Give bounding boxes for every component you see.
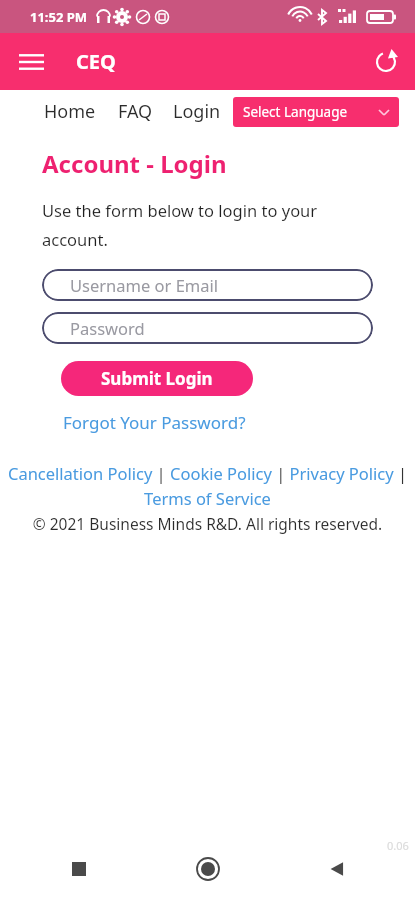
staticText: 0.06 [387, 838, 409, 853]
button[interactable]: Forgot Your Password? [63, 409, 246, 436]
staticText: CEQ [76, 48, 116, 75]
staticText: Home [44, 99, 96, 124]
button[interactable]: Login [173, 99, 221, 124]
button[interactable]: Select Language [233, 97, 399, 127]
button[interactable]: Home [186, 847, 230, 891]
staticText: Login [173, 99, 221, 124]
button[interactable]: Recent apps [57, 847, 101, 891]
staticText: 11:52 PM [30, 8, 88, 26]
button[interactable]: Back [315, 847, 359, 891]
button[interactable]: Open navigation menu [10, 41, 52, 83]
button[interactable]: Cancellation Policy | Cookie Policy | Pr… [0, 462, 415, 510]
staticText: © 2021 Business Minds R&D. All rights re… [0, 513, 415, 534]
staticText: Select Language [243, 103, 348, 121]
button[interactable]: FAQ [118, 99, 153, 124]
staticText: Account - Login [42, 147, 227, 180]
staticText: Use the form below to login to your acco… [42, 199, 367, 251]
staticText: Password [70, 317, 145, 339]
button[interactable]: Home [44, 99, 96, 124]
button[interactable]: Username or Email [42, 269, 373, 301]
staticText: Submit Login [101, 367, 213, 390]
staticText: Username or Email [70, 274, 219, 296]
button[interactable]: Refresh [364, 40, 408, 84]
staticText: Forgot Your Password? [63, 411, 246, 434]
button[interactable]: Password [42, 312, 373, 344]
button[interactable]: Submit Login [61, 361, 253, 396]
staticText: FAQ [118, 99, 153, 124]
